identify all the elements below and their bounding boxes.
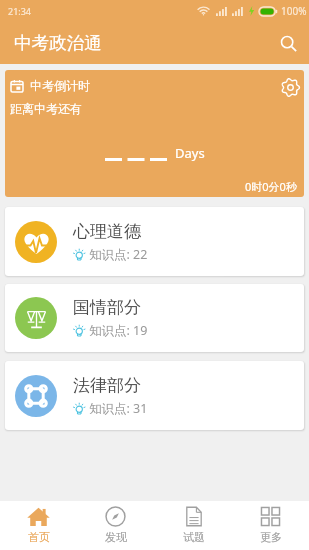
staticText: 国情部分 (73, 297, 141, 318)
staticText: 知识点: 19 (89, 322, 148, 339)
staticText: 中考倒计时 (30, 78, 90, 93)
staticText: 知识点: 22 (89, 246, 148, 263)
staticText: Days (175, 144, 205, 162)
staticText: 100% (281, 4, 307, 18)
staticText: 距离中考还有 (10, 101, 82, 116)
button[interactable]: 发现 (77, 501, 154, 550)
button[interactable]: 中考倒计时 (5, 70, 304, 197)
button[interactable]: 心理道德 (5, 207, 304, 276)
staticText: 更多 (260, 530, 282, 544)
button[interactable]: 首页 (0, 501, 77, 550)
staticText: 知识点: 31 (89, 400, 148, 417)
staticText: 心理道德 (73, 221, 141, 242)
staticText: 发现 (105, 530, 127, 544)
staticText: 试题 (183, 530, 205, 544)
button[interactable]: 试题 (155, 501, 232, 550)
button[interactable]: 法律部分 (5, 361, 304, 430)
staticText: 21:34 (8, 5, 32, 17)
button[interactable]: Search (273, 28, 303, 58)
button[interactable]: 更多 (232, 501, 309, 550)
staticText: 中考政治通 (14, 32, 102, 54)
staticText: 首页 (28, 530, 50, 544)
button[interactable]: 国情部分 (5, 284, 304, 352)
staticText: 0时0分0秒 (245, 179, 297, 194)
button[interactable]: Settings (279, 76, 301, 98)
staticText: 法律部分 (73, 375, 141, 396)
